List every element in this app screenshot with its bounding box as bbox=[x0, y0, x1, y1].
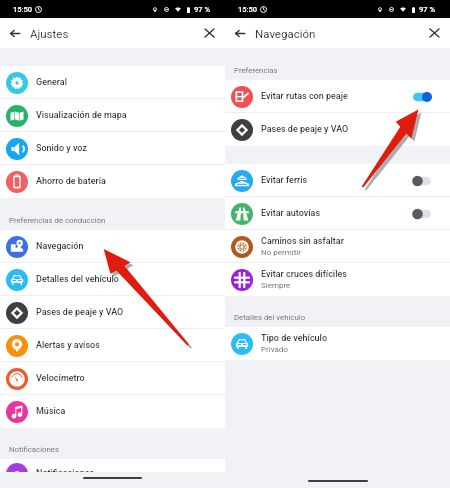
button[interactable]: Música bbox=[0, 395, 225, 428]
button[interactable]: Toggle off bbox=[413, 172, 431, 190]
staticText: Navegación bbox=[255, 27, 316, 40]
staticText: Detalles del vehículo bbox=[36, 274, 119, 285]
button[interactable]: Evitar cruces difíciles bbox=[225, 263, 450, 296]
staticText: Alertas y avisos bbox=[36, 340, 100, 351]
staticText: Siempre bbox=[261, 281, 291, 290]
button[interactable]: Detalles del vehículo bbox=[0, 263, 225, 296]
button[interactable]: Pases de peaje y VAO bbox=[0, 296, 225, 329]
staticText: 15:50 bbox=[13, 5, 33, 14]
button[interactable]: Evitar rutas con peaje bbox=[225, 80, 450, 113]
staticText: Notificaciones bbox=[9, 445, 59, 454]
staticText: Evitar rutas con peaje bbox=[261, 91, 348, 102]
button[interactable]: Caminos sin asfaltar bbox=[225, 230, 450, 263]
staticText: Ahorro de batería bbox=[36, 176, 106, 187]
button[interactable]: Close bbox=[199, 23, 219, 43]
staticText: Preferencias de conducción bbox=[9, 216, 106, 225]
button[interactable]: Back bbox=[230, 23, 250, 43]
button[interactable]: Alertas y avisos bbox=[0, 329, 225, 362]
staticText: Notificaciones bbox=[36, 468, 95, 479]
staticText: Privado bbox=[261, 345, 288, 354]
staticText: Ajustes bbox=[30, 27, 69, 40]
staticText: No permitir bbox=[261, 248, 301, 257]
button[interactable]: Ahorro de batería bbox=[0, 165, 225, 198]
staticText: Pases de peaje y VAO bbox=[36, 307, 124, 318]
staticText: Tipo de vehículo bbox=[261, 333, 327, 344]
button[interactable]: Back bbox=[5, 23, 25, 43]
button[interactable]: Evitar ferris bbox=[225, 164, 450, 197]
staticText: Sonido y voz bbox=[36, 143, 87, 154]
staticText: Evitar cruces difíciles bbox=[261, 269, 347, 280]
staticText: Música bbox=[36, 406, 66, 417]
staticText: Visualización de mapa bbox=[36, 110, 127, 121]
staticText: Velocímetro bbox=[36, 373, 85, 384]
button[interactable]: Toggle on bbox=[413, 88, 431, 106]
button[interactable]: Toggle off bbox=[413, 205, 431, 223]
staticText: Preferencias bbox=[234, 66, 278, 75]
button[interactable]: Tipo de vehículo bbox=[225, 327, 450, 360]
button[interactable]: Sonido y voz bbox=[0, 132, 225, 165]
staticText: Detalles del vehículo bbox=[234, 313, 306, 322]
button[interactable]: Notificaciones bbox=[0, 459, 225, 488]
button[interactable]: Navegación bbox=[0, 230, 225, 263]
button[interactable]: Evitar autovías bbox=[225, 197, 450, 230]
button[interactable]: General bbox=[0, 66, 225, 99]
button[interactable]: Velocímetro bbox=[0, 362, 225, 395]
staticText: General bbox=[36, 77, 67, 88]
staticText: Navegación bbox=[36, 241, 84, 252]
staticText: 97 % bbox=[194, 5, 210, 14]
button[interactable]: Close bbox=[424, 23, 444, 43]
staticText: 97 % bbox=[419, 5, 435, 14]
staticText: Evitar autovías bbox=[261, 208, 321, 219]
button[interactable]: Pases de peaje y VAO bbox=[225, 113, 450, 146]
staticText: 15:50 bbox=[238, 5, 258, 14]
button[interactable]: Visualización de mapa bbox=[0, 99, 225, 132]
staticText: Evitar ferris bbox=[261, 175, 308, 186]
staticText: Pases de peaje y VAO bbox=[261, 124, 349, 135]
staticText: Caminos sin asfaltar bbox=[261, 236, 344, 247]
